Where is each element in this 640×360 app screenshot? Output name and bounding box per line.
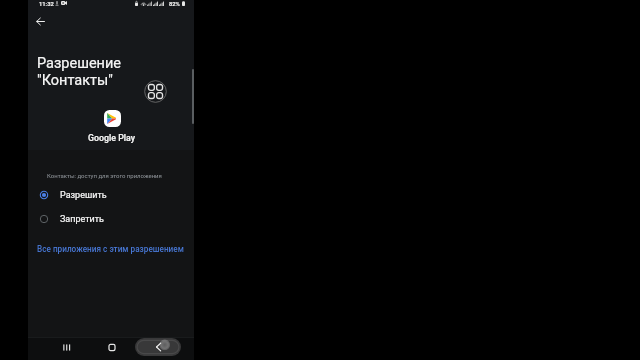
staticText: Google Play [88,133,136,143]
button[interactable]: Все приложения с этим разрешением [28,239,194,259]
staticText: Все приложения с этим разрешением [37,244,184,254]
button[interactable]: All apps [142,78,169,105]
staticText: Контакты: доступ для этого приложения [47,172,162,179]
button[interactable]: Запретить [28,207,194,231]
staticText: 82% [169,1,180,8]
staticText: Разрешение [37,55,121,72]
staticText: "Контакты" [37,72,113,89]
button[interactable]: Back [135,338,181,356]
staticText: 11:32 [39,1,54,8]
staticText: Разрешить [60,190,107,201]
button[interactable]: Home [99,338,125,357]
button[interactable]: Recent apps [53,338,78,357]
staticText: Запретить [60,214,104,225]
button[interactable]: Back [30,11,50,31]
button[interactable]: Разрешить [28,183,194,207]
